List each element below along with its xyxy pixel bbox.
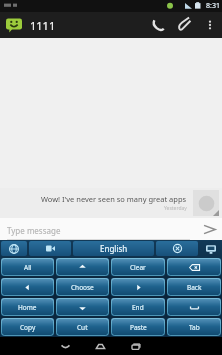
button[interactable]: All <box>1 258 54 276</box>
staticText: All <box>24 263 32 272</box>
button[interactable]: Down <box>56 298 109 316</box>
button[interactable]: Tab <box>167 318 221 336</box>
staticText: English <box>100 243 128 254</box>
button[interactable]: Type message <box>7 218 196 240</box>
button[interactable]: Recent apps <box>118 337 153 355</box>
staticText: Yesterday <box>164 205 187 212</box>
button[interactable]: Copy <box>1 318 54 336</box>
button[interactable]: Clear <box>111 258 165 276</box>
button[interactable]: Globe <box>1 241 27 256</box>
button[interactable]: End <box>111 298 165 316</box>
button[interactable]: Keyboard settings <box>201 241 221 256</box>
button[interactable]: Cut <box>56 318 109 336</box>
staticText: Clear <box>130 263 146 272</box>
button[interactable]: Delete <box>167 258 221 276</box>
staticText: Home <box>18 303 37 312</box>
button[interactable]: English <box>73 241 154 256</box>
staticText: Choose <box>71 283 94 292</box>
button[interactable]: Up <box>56 258 109 276</box>
button[interactable]: Attach <box>172 12 200 38</box>
button[interactable]: More options <box>200 12 220 38</box>
button[interactable]: Home <box>1 298 54 316</box>
button[interactable]: Home <box>83 337 118 355</box>
button[interactable]: Input method <box>29 241 71 256</box>
staticText: Tab <box>189 323 200 332</box>
button[interactable]: Close <box>156 241 198 256</box>
button[interactable]: Right <box>111 278 165 296</box>
staticText: Back <box>187 283 202 292</box>
staticText: Paste <box>130 323 147 332</box>
staticText: Copy <box>20 323 36 332</box>
button[interactable]: Call <box>144 12 172 38</box>
button[interactable]: Back <box>167 278 221 296</box>
staticText: Type message <box>7 225 61 236</box>
button[interactable]: Paste <box>111 318 165 336</box>
staticText: End <box>132 303 144 312</box>
staticText: Wow! I've never seen so many great apps <box>41 194 187 204</box>
staticText: 1111 <box>30 18 56 33</box>
staticText: 8:31 <box>206 1 220 11</box>
button[interactable]: Send <box>196 218 222 240</box>
button[interactable]: Left <box>1 278 54 296</box>
button[interactable]: Back <box>48 337 83 355</box>
button[interactable]: Space <box>167 298 221 316</box>
button[interactable]: Wow! I've never seen so many great apps <box>0 188 193 218</box>
staticText: Cut <box>77 323 88 332</box>
button[interactable]: Messaging app <box>5 16 23 34</box>
button[interactable]: Choose <box>56 278 109 296</box>
